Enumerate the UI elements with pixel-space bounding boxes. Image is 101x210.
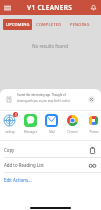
- staticText: Mail: [49, 130, 55, 134]
- button[interactable]: Close: [88, 96, 95, 103]
- staticText: Found this interesting app. Thought of: [17, 93, 66, 97]
- button[interactable]: Add to Reading List: [4, 158, 96, 172]
- staticText: PENDING: [70, 22, 90, 27]
- button[interactable]: Edit Actions...: [4, 173, 97, 187]
- staticText: Photos: [89, 130, 99, 134]
- button[interactable]: PENDING: [65, 19, 95, 30]
- staticText: 1: [15, 113, 17, 117]
- staticText: Chrome: [67, 130, 78, 134]
- button[interactable]: Chrome: [66, 111, 79, 134]
- button[interactable]: Copy: [4, 143, 96, 157]
- button[interactable]: Messages: [24, 111, 37, 134]
- button[interactable]: Menu: [0, 0, 15, 15]
- staticText: Messages: [24, 130, 37, 134]
- button[interactable]: Notifications: [86, 0, 101, 15]
- staticText: COMPLETED: [36, 22, 62, 27]
- button[interactable]: 1: [3, 111, 16, 134]
- staticText: Edit Actions...: [4, 177, 32, 183]
- button[interactable]: UPCOMING: [3, 19, 32, 30]
- button[interactable]: Mail: [45, 111, 58, 134]
- staticText: Add to Reading List: [4, 162, 44, 168]
- staticText: sharing with you so you may find it usef…: [17, 99, 71, 103]
- button[interactable]: COMPLETED: [32, 19, 65, 30]
- staticText: Copy: [4, 147, 15, 153]
- staticText: No results found: [32, 43, 69, 49]
- staticText: V1 CLEANERS: [27, 3, 73, 12]
- button[interactable]: Photos: [87, 111, 100, 134]
- staticText: airdrop: [5, 130, 15, 134]
- staticText: UPCOMING: [6, 22, 30, 27]
